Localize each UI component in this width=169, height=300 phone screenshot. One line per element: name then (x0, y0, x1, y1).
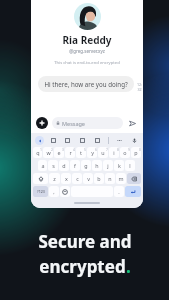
staticText: Message (62, 120, 85, 127)
staticText: f (74, 162, 76, 169)
button[interactable]: Enter (125, 186, 141, 197)
staticText: 1 (40, 148, 42, 152)
staticText: . (118, 188, 120, 195)
button[interactable]: 6 (87, 147, 97, 158)
staticText: 4 (73, 148, 75, 152)
button[interactable]: 2 (43, 147, 53, 158)
staticText: c (76, 175, 79, 182)
staticText: l (129, 162, 131, 169)
button[interactable]: c (72, 173, 82, 184)
staticText: Ria Reddy (62, 33, 112, 47)
staticText: b (97, 175, 101, 182)
button[interactable]: v (83, 173, 93, 184)
staticText: p (134, 149, 138, 156)
button[interactable]: Shift (33, 173, 48, 184)
button[interactable]: Add attachment (36, 117, 48, 129)
staticText: 6 (95, 148, 97, 152)
button[interactable]: Tool 1 (49, 136, 58, 145)
staticText: y (91, 149, 94, 156)
button[interactable]: n (105, 173, 115, 184)
button[interactable]: b (94, 173, 104, 184)
staticText: @greg.server.xyz (69, 48, 105, 54)
staticText: g (84, 162, 88, 169)
staticText: k (118, 162, 121, 169)
button[interactable]: Send (127, 118, 138, 129)
button[interactable]: . (114, 186, 124, 197)
button[interactable]: d (59, 160, 69, 171)
staticText: d (62, 162, 66, 169)
staticText: r (69, 149, 72, 156)
button[interactable]: , (49, 186, 59, 197)
staticText: j (107, 162, 109, 169)
button[interactable]: Backspace (127, 173, 141, 184)
staticText: 9 (128, 148, 130, 152)
staticText: z (53, 175, 56, 182)
staticText: n (108, 175, 112, 182)
button[interactable]: x (61, 173, 71, 184)
staticText: , (53, 188, 55, 195)
button[interactable]: f (70, 160, 80, 171)
staticText: e (57, 149, 61, 156)
staticText: i (113, 149, 115, 156)
staticText: v (87, 175, 90, 182)
button[interactable]: 7 (98, 147, 108, 158)
button[interactable]: 3 (54, 147, 64, 158)
button[interactable]: k (114, 160, 124, 171)
button[interactable]: 8 (109, 147, 119, 158)
staticText: q (36, 149, 40, 156)
staticText: a (41, 162, 45, 169)
staticText: u (101, 149, 105, 156)
staticText: w (46, 149, 51, 156)
staticText: m (118, 175, 124, 182)
button[interactable]: Back (35, 136, 44, 145)
staticText: 12:32 (136, 82, 143, 92)
button[interactable]: ?123 (33, 186, 48, 197)
button[interactable]: g (81, 160, 91, 171)
staticText: This chat is end-to-end encrypted (54, 60, 120, 66)
button[interactable]: l (125, 160, 135, 171)
button[interactable]: j (103, 160, 113, 171)
button[interactable]: m (116, 173, 126, 184)
staticText: x (65, 175, 68, 182)
button[interactable]: 5 (76, 147, 86, 158)
staticText: Secure and (38, 230, 132, 253)
button[interactable]: z (49, 173, 60, 184)
button[interactable]: a (38, 160, 47, 171)
button[interactable]: h (92, 160, 102, 171)
button[interactable]: Tool 2 (63, 136, 72, 145)
button[interactable]: Voice input (130, 136, 139, 145)
staticText: Hi there, how are you doing? (44, 80, 128, 88)
button[interactable]: Tool 3 (78, 136, 87, 145)
button[interactable]: Hi there, how are you doing? (38, 76, 134, 92)
staticText: 0 (139, 148, 141, 152)
staticText: 3 (62, 148, 64, 152)
button[interactable]: 1 (33, 147, 42, 158)
staticText: ?123 (37, 189, 45, 194)
staticText: . (126, 255, 131, 278)
staticText: encrypted (39, 255, 126, 278)
staticText: 5 (84, 148, 86, 152)
staticText: t (80, 149, 82, 156)
staticText: 2 (51, 148, 53, 152)
staticText: h (95, 162, 99, 169)
button[interactable]: 0 (131, 147, 141, 158)
button[interactable]: Emoji (60, 186, 70, 197)
staticText: 8 (117, 148, 119, 152)
staticText: o (123, 149, 127, 156)
button[interactable]: Message (52, 117, 123, 129)
button[interactable]: s (48, 160, 58, 171)
staticText: 7 (106, 148, 108, 152)
button[interactable]: 9 (120, 147, 130, 158)
button[interactable]: Tool 4 (93, 136, 102, 145)
button[interactable]: Profile photo (74, 3, 101, 30)
button[interactable]: 4 (65, 147, 75, 158)
button[interactable]: More (115, 136, 124, 145)
staticText: s (52, 162, 55, 169)
